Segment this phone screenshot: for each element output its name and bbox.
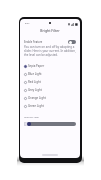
staticText: Intensity level xyxy=(24,116,39,119)
staticText: 9:41 xyxy=(25,22,30,25)
button[interactable]: Blue Light xyxy=(24,70,76,78)
staticText: You can turn on and off by adapting a sl… xyxy=(24,45,76,57)
staticText: Orange Light xyxy=(28,96,46,100)
button[interactable]: Enable Feature xyxy=(24,38,76,45)
button[interactable]: Red Light xyxy=(24,78,76,86)
button[interactable]: Sepia Paper xyxy=(24,62,76,70)
staticText: Blue Light xyxy=(28,72,42,76)
button[interactable]: Green Light xyxy=(24,102,76,110)
staticText: Green Light xyxy=(28,104,44,108)
staticText: Enable Feature xyxy=(24,40,43,44)
button[interactable]: Grey Light xyxy=(24,86,76,94)
staticText: Sepia Paper xyxy=(28,64,45,68)
staticText: Grey Light xyxy=(28,88,42,92)
button[interactable] xyxy=(24,121,76,126)
staticText: Bright Filter xyxy=(40,28,60,33)
staticText: Red Light xyxy=(28,80,41,84)
button[interactable]: Orange Light xyxy=(24,94,76,102)
